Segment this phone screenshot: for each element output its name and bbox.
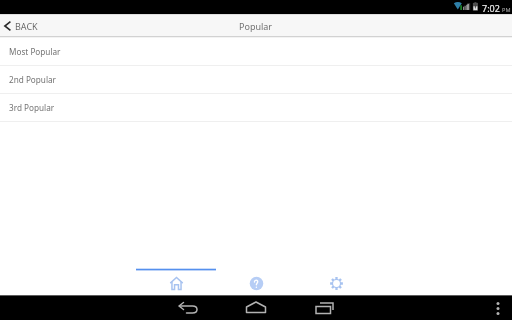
staticText: 2nd Popular (9, 74, 56, 85)
staticText: Popular (239, 20, 273, 32)
button[interactable]: Most Popular (0, 38, 512, 66)
staticText: 7:02 (482, 2, 500, 14)
staticText: BACK (15, 20, 38, 32)
button[interactable]: Home (136, 260, 216, 295)
staticText: 3rd Popular (9, 102, 55, 113)
button[interactable]: Settings (296, 260, 376, 295)
button[interactable]: BACK (0, 15, 46, 36)
button[interactable]: Help (216, 260, 296, 295)
staticText: Most Popular (9, 46, 61, 57)
button[interactable]: 2nd Popular (0, 66, 512, 94)
staticText: PM (502, 6, 511, 14)
button[interactable]: 3rd Popular (0, 94, 512, 122)
